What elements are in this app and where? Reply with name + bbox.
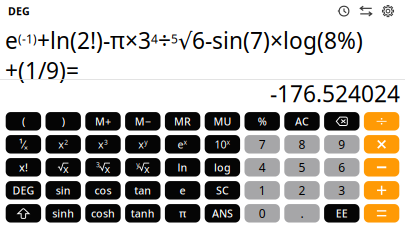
button[interactable]: Minus (364, 158, 399, 177)
button[interactable]: History (333, 0, 355, 22)
staticText: y (136, 160, 139, 169)
staticText: +(1/9)= (5, 55, 79, 85)
button[interactable]: 10x (205, 135, 240, 154)
button[interactable]: x3 (85, 135, 121, 154)
staticText: 10x (214, 137, 230, 151)
staticText: cosh (91, 206, 115, 220)
button[interactable]: Multiply (364, 135, 399, 154)
button[interactable]: 9 (324, 135, 359, 154)
button[interactable]: M+ (85, 112, 121, 130)
button[interactable]: e (165, 181, 200, 200)
button[interactable]: 3 (324, 181, 359, 200)
staticText: ¹⁄ₓ (19, 137, 28, 151)
staticText: 0 (259, 205, 266, 221)
staticText: ln (178, 160, 188, 174)
staticText: 8 (298, 136, 305, 152)
button[interactable]: 6 (324, 158, 359, 177)
staticText: x (63, 162, 69, 176)
staticText: AC (295, 114, 309, 128)
button[interactable]: square root (45, 158, 81, 177)
button[interactable]: y root (125, 158, 160, 177)
staticText: M+ (95, 114, 111, 128)
staticText: x2 (58, 137, 68, 151)
staticText: xy (138, 137, 147, 151)
staticText: DEG (12, 183, 34, 197)
button[interactable]: Convert (355, 0, 377, 22)
button[interactable]: 8 (284, 135, 320, 154)
staticText: 3 (338, 182, 345, 198)
button[interactable]: cosh (85, 204, 121, 223)
button[interactable]: Plus (364, 181, 399, 200)
staticText: M− (135, 114, 151, 128)
staticText: x3 (98, 137, 108, 151)
button[interactable]: π (165, 204, 200, 223)
staticText: x (105, 162, 111, 176)
button[interactable]: MU (205, 112, 240, 130)
staticText: cos (94, 183, 111, 197)
button[interactable]: ¹⁄ₓ (6, 135, 41, 154)
button[interactable]: ln (165, 158, 200, 177)
button[interactable]: M− (125, 112, 160, 130)
button[interactable]: Delete (324, 112, 359, 130)
staticText: ANS (212, 206, 233, 220)
staticText: e (180, 183, 186, 197)
button[interactable]: x2 (45, 135, 81, 154)
staticText: sinh (52, 206, 74, 220)
staticText: e(-1)+ln(2!)-π×34÷5√6-sin(7)×log(8%) (5, 25, 363, 55)
staticText: 4 (259, 159, 266, 175)
staticText: MR (174, 114, 191, 128)
staticText: 2 (298, 182, 305, 198)
button[interactable]: SC (205, 181, 240, 200)
button[interactable]: ANS (205, 204, 240, 223)
button[interactable]: DEG (6, 181, 41, 200)
button[interactable]: ex (165, 135, 200, 154)
button[interactable]: MR (165, 112, 200, 130)
button[interactable]: cos (85, 181, 121, 200)
button[interactable]: AC (284, 112, 320, 130)
staticText: π (179, 206, 186, 220)
button[interactable]: tanh (125, 204, 160, 223)
button[interactable]: 3 root (85, 158, 121, 177)
staticText: MU (213, 114, 231, 128)
button[interactable]: log (205, 158, 240, 177)
staticText: ex (178, 137, 188, 151)
staticText: . (300, 205, 303, 221)
button[interactable]: Equals (364, 204, 399, 223)
staticText: tan (134, 183, 151, 197)
button[interactable]: sinh (45, 204, 81, 223)
button[interactable]: ) (45, 112, 81, 130)
button[interactable]: ( (6, 112, 41, 130)
button[interactable]: 0 (244, 204, 280, 223)
staticText: DEG (8, 4, 30, 18)
button[interactable]: 1 (244, 181, 280, 200)
staticText: x! (19, 160, 28, 174)
button[interactable]: 4 (244, 158, 280, 177)
staticText: log (214, 160, 231, 174)
button[interactable]: 7 (244, 135, 280, 154)
button[interactable]: 5 (284, 158, 320, 177)
staticText: % (258, 114, 267, 128)
staticText: -176.524024 (270, 78, 400, 108)
button[interactable]: . (284, 204, 320, 223)
button[interactable]: Divide (364, 112, 399, 130)
button[interactable]: sin (45, 181, 81, 200)
staticText: 5 (298, 159, 305, 175)
button[interactable]: x! (6, 158, 41, 177)
staticText: ) (62, 114, 65, 128)
staticText: ( (22, 114, 25, 128)
staticText: 1 (259, 182, 266, 198)
button[interactable]: Settings (377, 0, 399, 22)
button[interactable]: % (244, 112, 280, 130)
staticText: SC (216, 183, 229, 197)
staticText: 9 (338, 136, 345, 152)
staticText: 7 (259, 136, 266, 152)
staticText: sin (56, 183, 71, 197)
button[interactable]: tan (125, 181, 160, 200)
button[interactable]: xy (125, 135, 160, 154)
staticText: 3 (96, 160, 100, 169)
button[interactable]: 2 (284, 181, 320, 200)
staticText: 6 (338, 159, 345, 175)
staticText: EE (336, 206, 348, 220)
button[interactable]: Shift (6, 204, 41, 223)
button[interactable]: EE (324, 204, 359, 223)
